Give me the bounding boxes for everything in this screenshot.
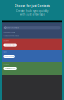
staticText: Urgent [3, 40, 8, 42]
staticText: Saved accounts [3, 32, 15, 33]
staticText: Choose for just Contacts [14, 4, 49, 8]
button[interactable]: Share Team [3, 55, 15, 58]
button[interactable]: Completed sync [3, 67, 17, 70]
staticText: with just a few taps [19, 13, 44, 16]
staticText: Work [3, 51, 7, 53]
staticText: Contacts [3, 63, 9, 65]
staticText: Create hub sync quickly [16, 9, 48, 13]
button[interactable]: Add new contact [3, 44, 17, 47]
staticText: Share Team [5, 56, 14, 57]
button[interactable]: Search contacts [3, 26, 61, 29]
staticText: Tap to add new contacts [3, 35, 19, 37]
staticText: Add new contact [5, 44, 16, 46]
staticText: Search contacts [7, 27, 19, 29]
staticText: Completed sync [5, 68, 16, 69]
